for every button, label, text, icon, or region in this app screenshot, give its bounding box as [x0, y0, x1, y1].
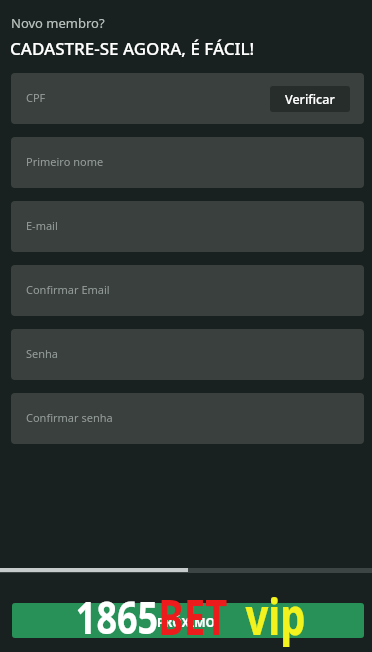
button[interactable]: Verificar [270, 86, 350, 112]
button[interactable]: E-mail [11, 201, 364, 252]
staticText: CADASTRE-SE AGORA, É FÁCIL! [10, 37, 255, 60]
button[interactable]: Senha [11, 329, 364, 380]
staticText: 1865 [76, 586, 158, 647]
staticText: BET [158, 584, 228, 649]
staticText: Confirmar Email [26, 282, 110, 297]
button[interactable]: PRÓXIMO [12, 603, 364, 638]
staticText: Confirmar senha [26, 410, 113, 425]
button[interactable]: Confirmar senha [11, 393, 364, 444]
staticText: CPF [26, 90, 46, 105]
button[interactable]: CPF [11, 73, 364, 124]
staticText: Novo membro? [11, 14, 105, 32]
staticText: Senha [26, 346, 59, 361]
staticText: Verificar [285, 91, 335, 108]
staticText: PRÓXIMO [157, 614, 216, 630]
button[interactable]: Primeiro nome [11, 137, 364, 188]
button[interactable]: Confirmar Email [11, 265, 364, 316]
staticText: E-mail [26, 218, 58, 233]
staticText: Primeiro nome [26, 154, 104, 169]
staticText: vip [245, 582, 306, 650]
